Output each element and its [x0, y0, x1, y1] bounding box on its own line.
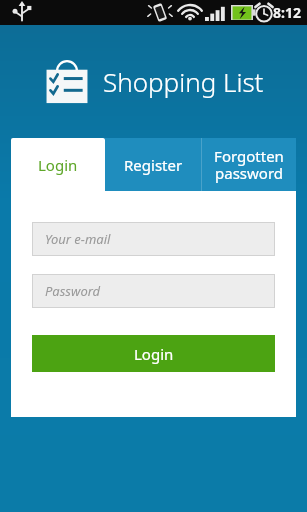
other: Shopping List logo [44, 57, 90, 105]
staticText: Shopping List [103, 64, 264, 99]
staticText: Register [124, 155, 183, 175]
staticText: Your e-mail [45, 230, 111, 248]
button[interactable]: Login [11, 138, 105, 191]
staticText: Forgotten password [214, 146, 284, 184]
button[interactable]: Your e-mail [32, 222, 275, 256]
staticText: 8:12 [273, 3, 301, 22]
button[interactable]: Forgotten password [201, 138, 296, 191]
staticText: Login [134, 344, 174, 364]
button[interactable]: Register [105, 138, 201, 191]
button[interactable]: Password [32, 274, 275, 308]
staticText: Login [38, 155, 78, 175]
staticText: Password [45, 282, 101, 300]
button[interactable]: Login [32, 335, 275, 372]
